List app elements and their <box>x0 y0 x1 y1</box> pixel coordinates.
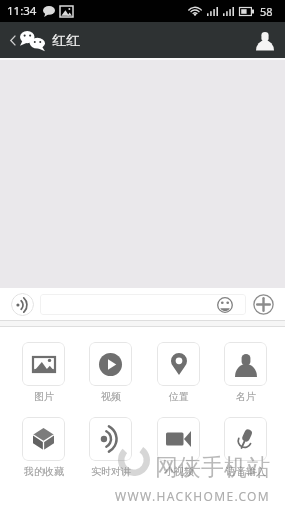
staticText: 11:34 <box>7 3 37 19</box>
staticText: 位置 <box>169 390 189 403</box>
button[interactable]: More options <box>252 293 275 316</box>
button[interactable]: Favorites <box>22 417 65 478</box>
staticText: 实时对讲 <box>91 465 131 478</box>
button[interactable]: Emoji <box>215 295 234 314</box>
other: Location <box>157 342 200 386</box>
staticText: 58 <box>260 4 273 19</box>
staticText: 小视频 <box>164 465 194 478</box>
other: Back <box>10 35 16 46</box>
button[interactable]: Contact info <box>247 26 285 55</box>
other: Contact card <box>224 342 267 386</box>
other: Photo <box>22 342 65 386</box>
button[interactable]: Back <box>0 31 86 50</box>
staticText: WWW.HACKHOME.COM <box>115 488 271 504</box>
other: Voice input <box>224 417 267 461</box>
button[interactable]: Contact card <box>224 342 267 403</box>
button[interactable] <box>40 294 246 315</box>
button[interactable]: Short video <box>157 417 200 478</box>
other: Favorites <box>22 417 65 461</box>
button[interactable]: Video <box>89 342 132 403</box>
other: Video <box>89 342 132 386</box>
staticText: 语音输入 <box>226 465 266 478</box>
staticText: 我的收藏 <box>24 465 64 478</box>
other: Walkie talkie <box>89 417 132 461</box>
button[interactable]: Location <box>157 342 200 403</box>
staticText: 名片 <box>236 390 256 403</box>
other: Short video <box>157 417 200 461</box>
button[interactable]: Voice message <box>11 293 34 316</box>
button[interactable]: Photo <box>22 342 65 403</box>
staticText: 视频 <box>101 390 121 403</box>
staticText: 网侠手机站 <box>155 453 270 482</box>
button[interactable]: Voice input <box>224 417 267 478</box>
button[interactable]: Walkie talkie <box>89 417 132 478</box>
staticText: 红红 <box>52 32 80 50</box>
staticText: 图片 <box>34 390 54 403</box>
